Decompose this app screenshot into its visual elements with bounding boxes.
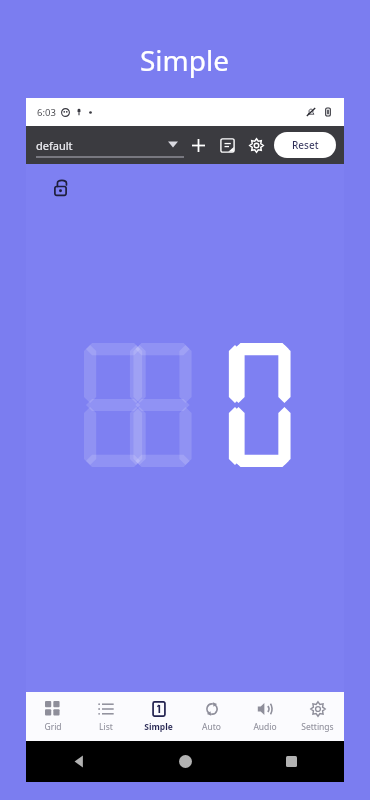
button[interactable]: Recents xyxy=(238,741,344,782)
staticText: List xyxy=(99,721,113,733)
button[interactable]: Auto xyxy=(185,692,238,741)
button[interactable]: Home xyxy=(132,741,238,782)
staticText: 6:03 xyxy=(37,106,56,119)
button[interactable]: Simple xyxy=(132,692,185,741)
staticText: Settings xyxy=(301,721,334,733)
button[interactable]: Settings xyxy=(242,131,271,160)
button[interactable]: Back xyxy=(26,741,132,782)
button[interactable]: Add xyxy=(184,131,213,160)
staticText: Simple xyxy=(140,41,230,79)
staticText: Grid xyxy=(44,721,62,733)
staticText: Reset xyxy=(292,138,319,152)
button[interactable]: Reset xyxy=(274,132,336,158)
staticText: Simple xyxy=(144,721,173,733)
button[interactable]: Unlock xyxy=(45,172,75,202)
staticText: default xyxy=(36,138,73,153)
staticText: Audio xyxy=(253,721,277,733)
button[interactable]: Notes xyxy=(213,131,242,160)
staticText: Auto xyxy=(202,721,221,733)
button[interactable]: Audio xyxy=(238,692,291,741)
button[interactable]: List xyxy=(79,692,132,741)
button[interactable]: Settings xyxy=(291,692,344,741)
button[interactable]: default xyxy=(36,132,184,158)
button[interactable]: Grid xyxy=(26,692,79,741)
